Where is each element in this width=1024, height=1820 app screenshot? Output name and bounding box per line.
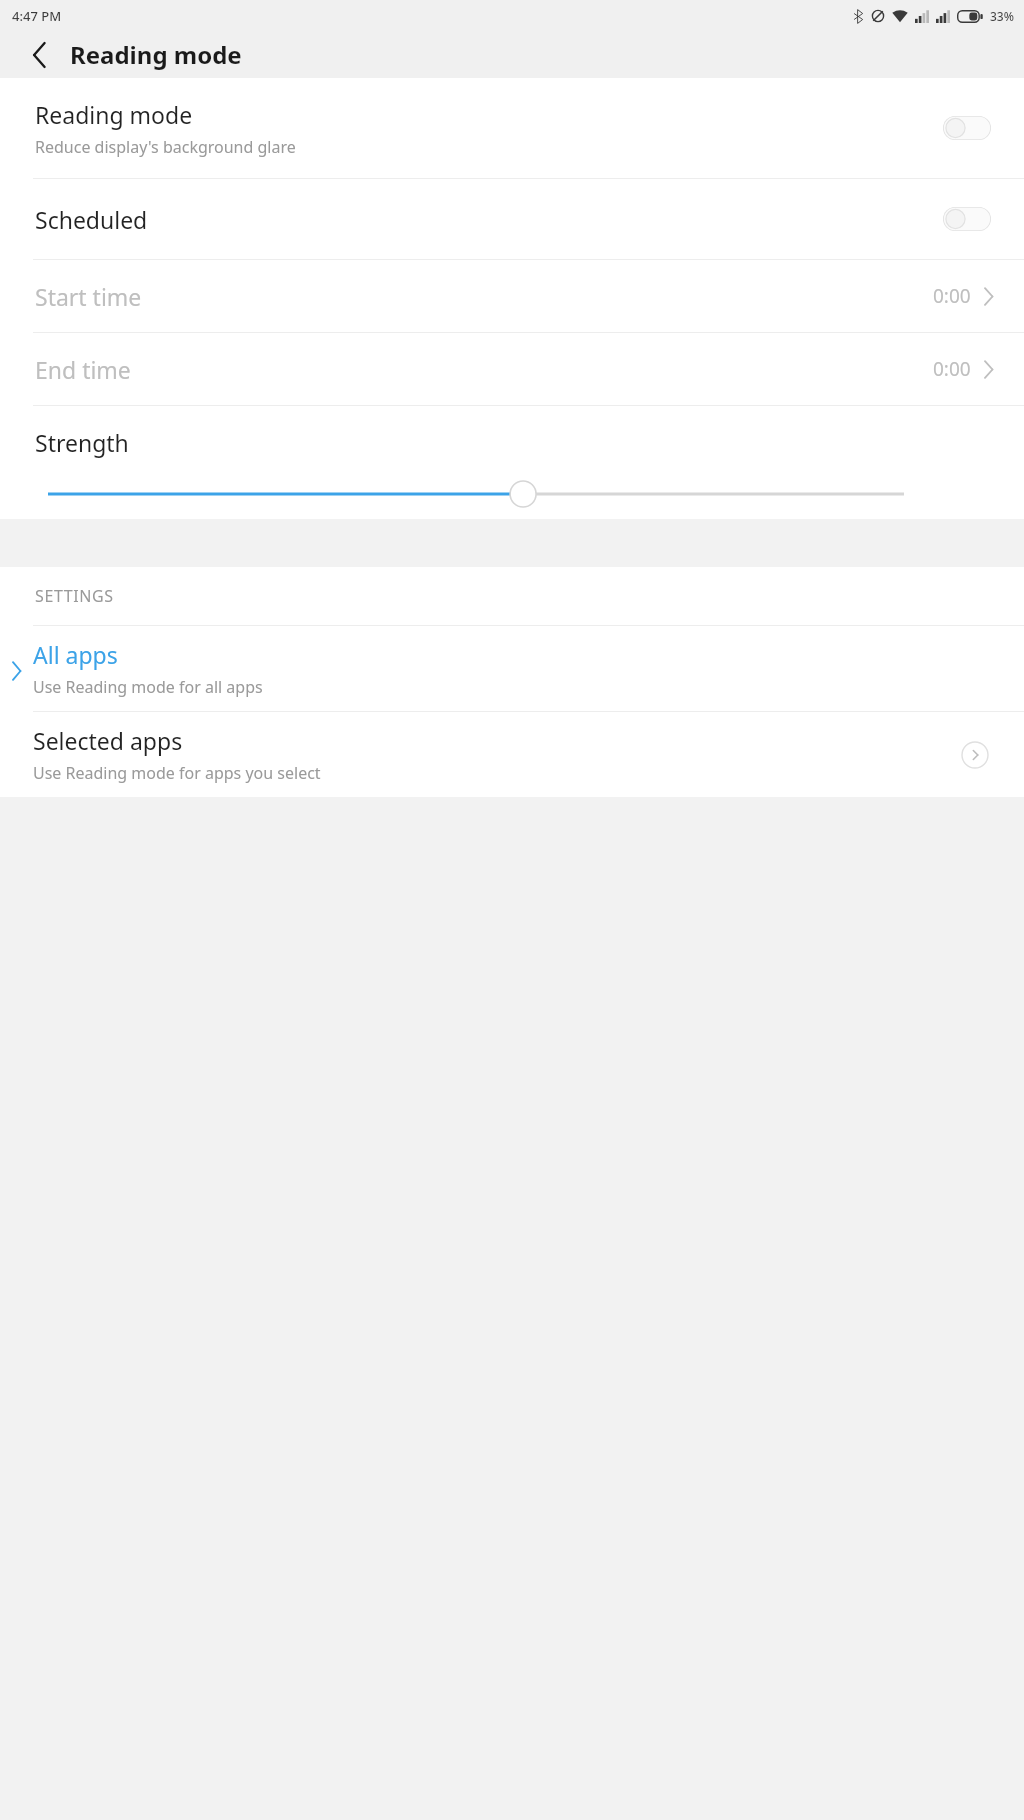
staticText: 0:00 xyxy=(933,283,971,309)
staticText: 33% xyxy=(990,8,1014,24)
staticText: Use Reading mode for all apps xyxy=(33,676,263,698)
button[interactable]: Toggle xyxy=(943,116,991,140)
staticText: Reduce display's background glare xyxy=(35,136,296,158)
staticText: 4:47 PM xyxy=(12,7,62,25)
button[interactable]: Start time xyxy=(0,260,1024,332)
staticText: 0:00 xyxy=(933,356,971,382)
button[interactable]: End time xyxy=(0,333,1024,405)
staticText: Selected apps xyxy=(33,725,183,756)
staticText: Scheduled xyxy=(35,204,148,235)
staticText: SETTINGS xyxy=(35,585,114,607)
button[interactable]: Reading mode xyxy=(0,78,1024,178)
staticText: Reading mode xyxy=(70,38,242,71)
staticText: Start time xyxy=(35,281,933,312)
button[interactable]: Back xyxy=(22,38,56,72)
button[interactable]: All apps xyxy=(0,626,1024,711)
button[interactable]: Toggle xyxy=(943,207,991,231)
staticText: Use Reading mode for apps you select xyxy=(33,762,321,784)
button[interactable]: Strength slider xyxy=(0,474,1024,514)
staticText: Strength xyxy=(35,427,129,458)
staticText: End time xyxy=(35,354,933,385)
button[interactable]: Scheduled xyxy=(0,179,1024,259)
staticText: All apps xyxy=(33,639,118,670)
button[interactable]: Selected apps xyxy=(0,712,1024,797)
staticText: Reading mode xyxy=(35,99,193,130)
